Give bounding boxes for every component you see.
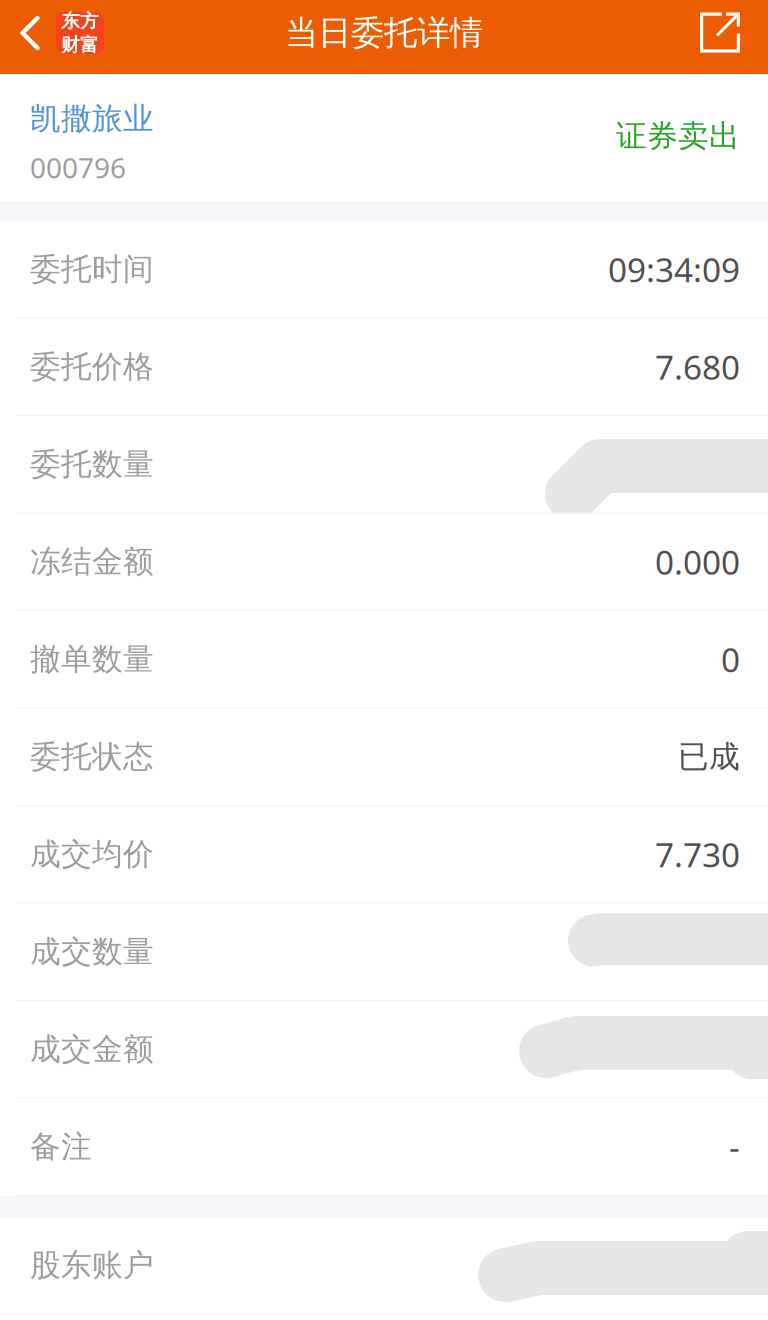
staticText: 当日委托详情 <box>285 12 483 53</box>
staticText: 委托状态 <box>30 738 154 776</box>
button[interactable]: Back <box>0 0 118 74</box>
staticText: 委托价格 <box>30 348 154 386</box>
staticText: 000796 <box>30 149 126 186</box>
staticText: 证券卖出 <box>616 117 740 155</box>
staticText: 0.000 <box>655 540 740 584</box>
staticText: 09:34:09 <box>608 247 740 291</box>
staticText: 凯撒旅业 <box>30 100 154 138</box>
staticText: 7.680 <box>655 345 740 389</box>
button[interactable]: Share <box>670 0 768 74</box>
staticText: 冻结金额 <box>30 543 154 581</box>
staticText: 撤单数量 <box>30 640 154 678</box>
staticText: 成交均价 <box>30 835 154 873</box>
staticText: 成交金额 <box>30 1030 154 1068</box>
staticText: 东方 <box>61 10 99 32</box>
staticText: 财富 <box>61 33 99 56</box>
staticText: 已成 <box>678 738 740 776</box>
staticText: 备注 <box>30 1128 92 1166</box>
staticText: 委托时间 <box>30 250 154 288</box>
staticText: 股东账户 <box>30 1246 154 1284</box>
staticText: 成交数量 <box>30 933 154 971</box>
staticText: 委托数量 <box>30 445 154 483</box>
staticText: 0 <box>721 637 740 681</box>
staticText: - <box>729 1125 740 1169</box>
staticText: 7.730 <box>655 832 740 876</box>
